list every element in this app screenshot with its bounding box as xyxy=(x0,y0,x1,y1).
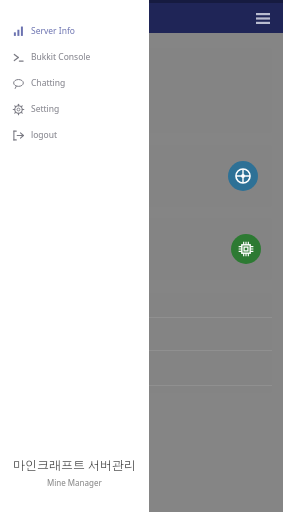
button[interactable]: Setting xyxy=(0,96,149,122)
staticText: Chatting xyxy=(31,77,66,89)
button[interactable]: Server action xyxy=(228,161,258,191)
button[interactable]: Server action xyxy=(6,145,272,207)
staticText: 마인크래프트 서버관리 xyxy=(13,456,137,472)
button[interactable]: isOP xyxy=(6,293,272,393)
button[interactable]: Chatting xyxy=(0,70,149,96)
staticText: Spigot (1.15.2) xyxy=(18,85,79,97)
staticText: Mine Manager xyxy=(47,477,102,488)
staticText: Server Info xyxy=(31,25,76,37)
staticText: Setting xyxy=(31,103,60,115)
button[interactable]: Server action xyxy=(6,218,272,280)
button[interactable]: Spigot (1.15.2) xyxy=(6,48,272,133)
button[interactable]: Bukkit Console xyxy=(0,44,149,70)
button[interactable]: Server Info xyxy=(0,18,149,44)
staticText: Bukkit Console xyxy=(31,51,91,63)
staticText: logout xyxy=(31,129,58,141)
button[interactable]: logout xyxy=(0,122,149,148)
button[interactable]: Open navigation menu xyxy=(251,6,275,30)
button[interactable]: Server action xyxy=(231,234,261,264)
